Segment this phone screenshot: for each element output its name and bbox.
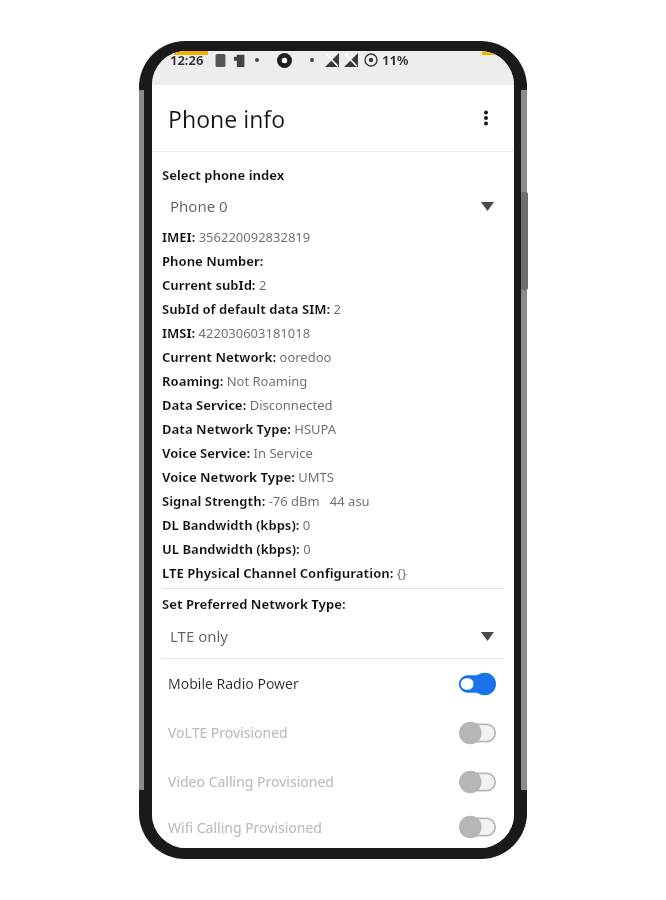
staticText: UL Bandwidth (kbps): 0 (162, 540, 504, 558)
button[interactable]: VoLTE Provisioned (162, 708, 504, 757)
staticText: Signal Strength: -76 dBm 44 asu (162, 492, 504, 510)
button[interactable]: Wifi Calling Provisioned (162, 806, 504, 848)
staticText: Wifi Calling Provisioned (168, 818, 322, 837)
staticText: Roaming: Not Roaming (162, 372, 504, 390)
button[interactable]: LTE only (162, 621, 504, 651)
staticText: 11% (382, 51, 409, 69)
staticText: IMEI: 356220092832819 (162, 228, 504, 246)
staticText: Phone Number: (162, 252, 504, 270)
staticText: Voice Network Type: UMTS (162, 468, 504, 486)
staticText: Select phone index (162, 166, 285, 184)
staticText: Phone 0 (170, 196, 228, 216)
staticText: Video Calling Provisioned (168, 772, 334, 791)
staticText: Set Preferred Network Type: (162, 595, 346, 613)
staticText: LTE Physical Channel Configuration: {} (162, 564, 504, 582)
button[interactable]: Phone 0 (162, 191, 504, 221)
staticText: Data Network Type: HSUPA (162, 420, 504, 438)
staticText: 12:26 (170, 51, 204, 69)
staticText: Mobile Radio Power (168, 674, 299, 693)
staticText: SubId of default data SIM: 2 (162, 300, 504, 318)
staticText: Current subId: 2 (162, 276, 504, 294)
button[interactable]: Mobile Radio Power (162, 659, 504, 708)
staticText: Voice Service: In Service (162, 444, 504, 462)
staticText: VoLTE Provisioned (168, 723, 288, 742)
staticText: LTE only (170, 626, 229, 646)
button[interactable]: Video Calling Provisioned (162, 757, 504, 806)
staticText: Phone info (168, 103, 286, 134)
staticText: IMSI: 422030603181018 (162, 324, 504, 342)
staticText: DL Bandwidth (kbps): 0 (162, 516, 504, 534)
staticText: Current Network: ooredoo (162, 348, 504, 366)
button[interactable]: More options (466, 98, 506, 138)
staticText: Data Service: Disconnected (162, 396, 504, 414)
